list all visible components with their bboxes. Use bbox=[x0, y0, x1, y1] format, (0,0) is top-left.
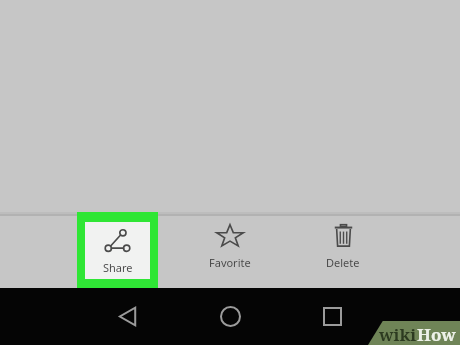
staticText: Share bbox=[103, 260, 133, 275]
staticText: How bbox=[417, 323, 456, 345]
button[interactable]: Share bbox=[77, 212, 158, 288]
button[interactable]: Delete bbox=[303, 224, 383, 279]
staticText: Delete bbox=[326, 255, 360, 270]
button[interactable]: Back bbox=[104, 292, 152, 340]
staticText: wiki bbox=[379, 323, 417, 345]
staticText: Favorite bbox=[209, 255, 251, 270]
button[interactable]: Recent apps bbox=[308, 292, 356, 340]
button[interactable]: Home bbox=[206, 292, 254, 340]
button[interactable]: Favorite bbox=[190, 224, 270, 279]
